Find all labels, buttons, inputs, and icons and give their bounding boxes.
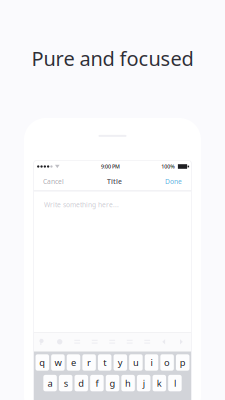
staticText: o — [164, 356, 170, 369]
button[interactable]: y — [113, 354, 127, 371]
button[interactable]: r — [82, 354, 96, 371]
button[interactable]: h — [121, 375, 135, 391]
button[interactable]: Link — [108, 337, 117, 347]
button[interactable]: Cancel — [41, 174, 66, 189]
button[interactable]: List — [90, 337, 99, 347]
button[interactable]: u — [129, 354, 143, 371]
staticText: j — [143, 377, 145, 389]
staticText: a — [48, 377, 53, 389]
button[interactable]: a — [43, 375, 57, 391]
staticText: y — [118, 356, 123, 369]
staticText: h — [125, 377, 131, 389]
staticText: k — [157, 377, 162, 389]
button[interactable]: t — [98, 354, 111, 371]
staticText: t — [103, 356, 106, 369]
staticText: Pure and focused — [31, 45, 193, 72]
button[interactable]: Camera — [55, 337, 64, 347]
staticText: p — [180, 356, 186, 369]
button[interactable]: Previous — [160, 337, 169, 347]
staticText: 9:00 PM — [101, 163, 120, 170]
staticText: d — [78, 377, 84, 389]
staticText: l — [174, 377, 176, 389]
button[interactable]: i — [145, 354, 158, 371]
staticText: Title — [107, 177, 122, 186]
button[interactable]: l — [168, 375, 182, 391]
staticText: i — [150, 356, 152, 369]
staticText: s — [64, 377, 68, 389]
button[interactable]: k — [152, 375, 166, 391]
button[interactable]: q — [35, 354, 49, 371]
button[interactable]: Text style — [38, 337, 47, 347]
staticText: Write something here... — [44, 200, 119, 209]
staticText: q — [39, 356, 45, 369]
button[interactable]: Attach — [73, 337, 82, 347]
button[interactable]: Indent — [143, 337, 152, 347]
button[interactable]: Next — [178, 337, 187, 347]
button[interactable]: Quote — [125, 337, 134, 347]
staticText: f — [95, 377, 98, 389]
button[interactable]: j — [137, 375, 150, 391]
button[interactable]: e — [67, 354, 80, 371]
button[interactable]: o — [160, 354, 174, 371]
staticText: g — [109, 377, 115, 389]
staticText: r — [87, 356, 91, 369]
button[interactable]: s — [59, 375, 72, 391]
button[interactable]: g — [106, 375, 119, 391]
button[interactable]: d — [74, 375, 88, 391]
button[interactable]: w — [51, 354, 65, 371]
staticText: e — [71, 356, 76, 369]
staticText: w — [54, 356, 61, 369]
button[interactable]: p — [176, 354, 189, 371]
staticText: Cancel — [43, 177, 64, 186]
staticText: Done — [165, 177, 182, 186]
staticText: u — [133, 356, 139, 369]
button[interactable]: f — [90, 375, 104, 391]
staticText: 100% — [161, 163, 175, 170]
button[interactable]: Done — [163, 174, 184, 189]
